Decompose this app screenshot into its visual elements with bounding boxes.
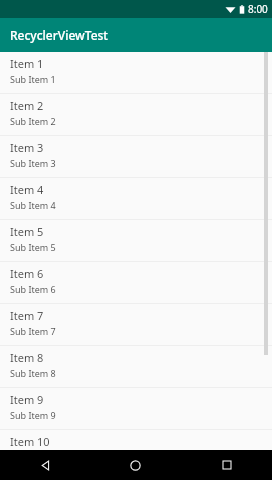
button[interactable]: Item 9 (0, 388, 272, 430)
staticText: Sub Item 5 (10, 241, 56, 253)
button[interactable]: Item 6 (0, 262, 272, 304)
staticText: Item 2 (10, 98, 44, 113)
staticText: Item 8 (10, 350, 44, 365)
button[interactable]: Recent apps (181, 450, 272, 480)
staticText: Sub Item 6 (10, 283, 56, 295)
staticText: Item 4 (10, 182, 44, 197)
staticText: Item 1 (10, 56, 44, 71)
staticText: Sub Item 1 (10, 73, 56, 85)
staticText: Sub Item 4 (10, 199, 56, 211)
button[interactable]: Item 3 (0, 136, 272, 178)
button[interactable]: Back (0, 450, 90, 480)
button[interactable]: Home (90, 450, 181, 480)
button[interactable]: Item 7 (0, 304, 272, 346)
staticText: Sub Item 3 (10, 157, 56, 169)
staticText: Sub Item 2 (10, 115, 56, 127)
staticText: Sub Item 8 (10, 367, 56, 379)
staticText: Item 10 (10, 434, 50, 449)
staticText: Item 7 (10, 308, 44, 323)
button[interactable]: Item 4 (0, 178, 272, 220)
staticText: Item 9 (10, 392, 44, 407)
button[interactable]: Item 2 (0, 94, 272, 136)
staticText: Item 5 (10, 224, 44, 239)
button[interactable]: Item 5 (0, 220, 272, 262)
staticText: RecyclerViewTest (10, 27, 108, 43)
button[interactable]: Item 8 (0, 346, 272, 388)
staticText: Item 3 (10, 140, 44, 155)
staticText: Item 6 (10, 266, 44, 281)
staticText: Sub Item 7 (10, 325, 56, 337)
staticText: Sub Item 9 (10, 409, 56, 421)
button[interactable]: Item 1 (0, 52, 272, 94)
staticText: 8:00 (248, 2, 268, 16)
button[interactable]: Item 10 (0, 430, 272, 450)
